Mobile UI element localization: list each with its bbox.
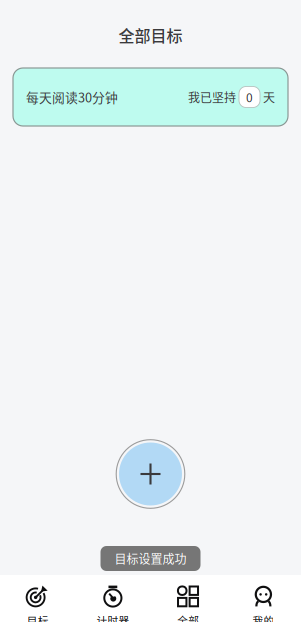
- staticText: 目标: [27, 612, 49, 622]
- staticText: 天: [263, 88, 275, 106]
- staticText: 全部: [177, 612, 199, 622]
- staticText: 我已坚持: [188, 88, 236, 106]
- button[interactable]: 计时器: [75, 575, 150, 622]
- staticText: 0: [246, 88, 253, 106]
- button[interactable]: 添加目标: [115, 439, 185, 509]
- staticText: 每天阅读30分钟: [26, 88, 118, 106]
- button[interactable]: 我的: [226, 575, 301, 622]
- staticText: 我的: [252, 612, 274, 622]
- staticText: 计时器: [96, 612, 129, 622]
- staticText: 目标设置成功: [114, 550, 186, 567]
- button[interactable]: 目标: [0, 575, 75, 622]
- button[interactable]: 全部: [150, 575, 226, 622]
- staticText: 全部目标: [118, 23, 182, 47]
- button[interactable]: 每天阅读30分钟: [13, 68, 288, 126]
